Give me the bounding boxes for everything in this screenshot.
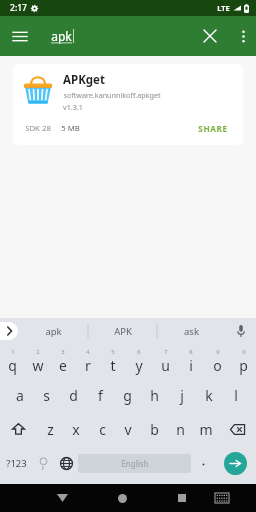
button[interactable]: 0 bbox=[230, 344, 256, 378]
staticText: p bbox=[239, 356, 248, 375]
staticText: q bbox=[8, 356, 17, 375]
staticText: z bbox=[47, 420, 54, 439]
button[interactable] bbox=[191, 446, 215, 481]
button[interactable]: 2 bbox=[25, 344, 50, 378]
staticText: u bbox=[161, 356, 170, 375]
staticText: a bbox=[16, 386, 24, 405]
button[interactable]: Recent apps bbox=[162, 484, 202, 512]
button[interactable]: j bbox=[168, 378, 195, 412]
staticText: ask bbox=[184, 325, 199, 338]
staticText: English bbox=[121, 458, 149, 469]
staticText: o bbox=[213, 356, 222, 375]
staticText: v bbox=[124, 420, 132, 439]
staticText: 4 bbox=[86, 348, 90, 356]
button[interactable]: 5 bbox=[100, 344, 126, 378]
staticText: APK bbox=[114, 325, 132, 338]
button[interactable]: Back bbox=[43, 484, 82, 512]
staticText: d bbox=[69, 386, 78, 405]
button[interactable]: v bbox=[115, 412, 141, 446]
button[interactable]: l bbox=[222, 378, 249, 412]
staticText: f bbox=[98, 386, 103, 405]
staticText: 0 bbox=[242, 348, 246, 356]
button[interactable]: n bbox=[167, 412, 193, 446]
button[interactable]: SHARE bbox=[196, 121, 230, 136]
staticText: y bbox=[135, 356, 143, 375]
button[interactable]: z bbox=[37, 412, 63, 446]
staticText: 6 bbox=[137, 348, 141, 356]
button[interactable]: apk bbox=[18, 318, 88, 344]
staticText: w bbox=[32, 356, 44, 375]
button[interactable]: h bbox=[141, 378, 168, 412]
staticText: c bbox=[99, 420, 106, 439]
staticText: e bbox=[59, 356, 67, 375]
button[interactable]: Voice input bbox=[226, 318, 256, 344]
staticText: k bbox=[205, 386, 213, 405]
staticText: 7 bbox=[164, 348, 168, 356]
button[interactable]: c bbox=[89, 412, 115, 446]
button[interactable]: x bbox=[63, 412, 89, 446]
button[interactable]: Open navigation drawer bbox=[0, 16, 40, 56]
staticText: 2 bbox=[36, 348, 40, 356]
staticText: apk bbox=[45, 325, 62, 338]
button[interactable]: a bbox=[7, 378, 33, 412]
button[interactable]: Search bbox=[224, 452, 247, 475]
staticText: g bbox=[123, 386, 132, 405]
staticText: ?123 bbox=[6, 457, 27, 470]
staticText: i bbox=[189, 356, 193, 375]
staticText: 9 bbox=[216, 348, 220, 356]
staticText: apk bbox=[51, 28, 72, 44]
staticText: SHARE bbox=[198, 123, 228, 134]
button[interactable]: More suggestions bbox=[0, 322, 18, 340]
staticText: 5 MB bbox=[61, 123, 80, 134]
staticText: 3 bbox=[61, 348, 65, 356]
button[interactable]: English bbox=[78, 454, 191, 473]
staticText: 1 bbox=[11, 348, 15, 356]
staticText: b bbox=[150, 420, 159, 439]
button[interactable]: ?123 bbox=[0, 446, 32, 481]
staticText: l bbox=[234, 386, 238, 405]
button[interactable]: Shift bbox=[0, 412, 37, 446]
button[interactable]: 9 bbox=[204, 344, 230, 378]
button[interactable]: 1 bbox=[0, 344, 25, 378]
button[interactable]: k bbox=[195, 378, 222, 412]
staticText: 2:17 bbox=[10, 2, 27, 14]
button[interactable]: 3 bbox=[50, 344, 75, 378]
button[interactable]: Home bbox=[102, 484, 142, 512]
staticText: v1.3.1 bbox=[63, 102, 83, 112]
button[interactable]: Backspace bbox=[219, 412, 256, 446]
button[interactable]: Switch keyboard bbox=[202, 484, 242, 512]
button[interactable]: APKget bbox=[13, 64, 243, 145]
staticText: 5 bbox=[111, 348, 115, 356]
button[interactable]: g bbox=[114, 378, 141, 412]
staticText: j bbox=[180, 386, 184, 405]
staticText: SDK 28 bbox=[25, 123, 51, 134]
staticText: s bbox=[43, 386, 50, 405]
staticText: n bbox=[176, 420, 185, 439]
button[interactable]: More options bbox=[230, 16, 256, 56]
staticText: software.kanunnikoff.apkget bbox=[63, 90, 161, 100]
button[interactable]: APK bbox=[88, 318, 157, 344]
button[interactable]: 7 bbox=[152, 344, 178, 378]
button[interactable]: d bbox=[60, 378, 87, 412]
button[interactable]: m bbox=[193, 412, 219, 446]
button[interactable]: 8 bbox=[178, 344, 204, 378]
staticText: t bbox=[110, 356, 116, 375]
staticText: r bbox=[85, 356, 91, 375]
button[interactable]: f bbox=[87, 378, 114, 412]
button[interactable]: b bbox=[141, 412, 167, 446]
button[interactable]: Clear search bbox=[190, 16, 230, 56]
staticText: x bbox=[72, 420, 80, 439]
button[interactable]: 4 bbox=[75, 344, 100, 378]
button[interactable]: Emoji bbox=[32, 446, 54, 481]
button[interactable]: s bbox=[33, 378, 60, 412]
button[interactable]: ask bbox=[157, 318, 226, 344]
staticText: m bbox=[199, 420, 213, 439]
button[interactable]: 6 bbox=[126, 344, 152, 378]
staticText: LTE bbox=[217, 3, 230, 13]
staticText: APKget bbox=[63, 72, 105, 88]
staticText: 8 bbox=[189, 348, 193, 356]
button[interactable]: Change keyboard language bbox=[54, 446, 78, 481]
staticText: h bbox=[150, 386, 159, 405]
button[interactable]: apk bbox=[51, 28, 190, 44]
